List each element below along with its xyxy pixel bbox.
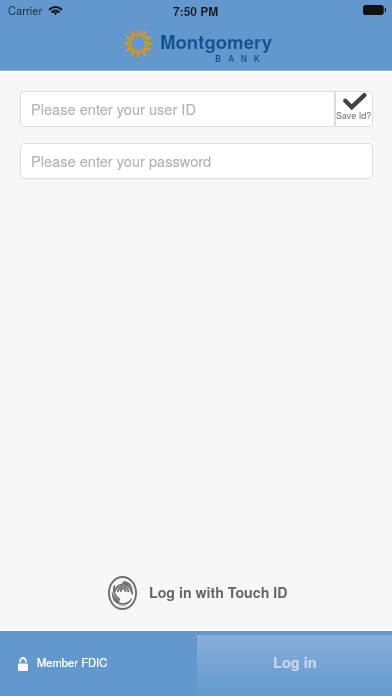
staticText: Please enter your password xyxy=(31,150,212,171)
staticText: Member FDIC xyxy=(37,654,108,670)
staticText: Log in with Touch ID xyxy=(149,582,288,602)
staticText: Carrier xyxy=(8,2,43,18)
button[interactable]: Please enter your user ID xyxy=(20,91,335,127)
button[interactable]: Log in xyxy=(197,635,392,696)
staticText: 7:50 PM xyxy=(173,2,219,19)
staticText: B A N K xyxy=(215,52,263,64)
button[interactable]: Member FDIC xyxy=(0,631,392,696)
button[interactable]: Log in with Touch ID xyxy=(108,575,288,611)
staticText: Please enter your user ID xyxy=(31,98,196,119)
button[interactable]: Please enter your password xyxy=(20,143,373,179)
staticText: Save Id? xyxy=(336,109,372,122)
button[interactable]: Save Id xyxy=(335,91,373,127)
staticText: Montgomery xyxy=(160,28,273,55)
staticText: Log in xyxy=(273,652,317,673)
